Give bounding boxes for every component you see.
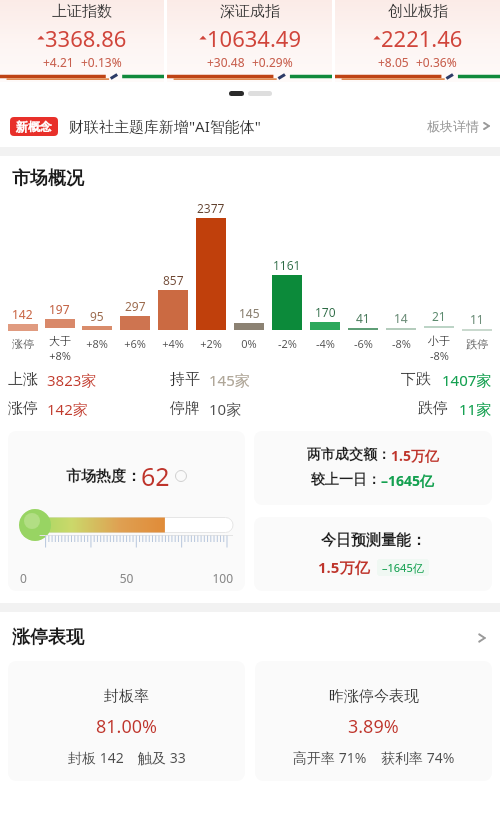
- staticText: 11家: [459, 399, 492, 419]
- staticText: -4%: [316, 336, 335, 351]
- staticText: 新概念: [16, 119, 52, 134]
- staticText: +2%: [200, 336, 222, 351]
- staticText: 0: [20, 570, 91, 586]
- staticText: +0.36%: [416, 54, 457, 70]
- staticText: +8.05: [378, 54, 409, 70]
- staticText: 获利率 74%: [381, 748, 455, 767]
- button[interactable]: 两市成交额：: [254, 431, 492, 505]
- staticText: 触及 33: [138, 748, 186, 767]
- staticText: 10家: [209, 399, 242, 419]
- staticText: 14: [394, 310, 408, 326]
- staticText: 板块详情: [427, 118, 479, 134]
- staticText: 100: [162, 570, 233, 586]
- staticText: 21: [432, 308, 446, 324]
- staticText: 停牌: [170, 399, 200, 418]
- staticText: 财联社主题库新增"AI智能体": [69, 116, 261, 136]
- button[interactable]: 今日预测量能：: [254, 517, 492, 591]
- button[interactable]: 新概念: [0, 105, 500, 147]
- staticText: 3823家: [47, 370, 97, 390]
- button[interactable]: 深证成指: [167, 0, 332, 82]
- staticText: 11: [470, 311, 484, 327]
- staticText: 创业板指: [388, 2, 448, 21]
- staticText: +30.48: [207, 54, 245, 70]
- staticText: 0%: [241, 336, 257, 351]
- staticText: 145家: [209, 370, 250, 390]
- staticText: 2221.46: [381, 23, 463, 53]
- staticText: -2%: [278, 336, 297, 351]
- staticText: 今日预测量能：: [321, 531, 426, 550]
- staticText: 3368.86: [45, 23, 127, 53]
- staticText: +8%: [49, 348, 71, 363]
- staticText: 142: [12, 306, 33, 322]
- staticText: 涨停: [12, 337, 34, 351]
- staticText: 81.00%: [96, 714, 157, 739]
- staticText: 市场概况: [12, 167, 84, 190]
- staticText: 197: [49, 301, 70, 317]
- staticText: 1.5万亿: [318, 557, 370, 577]
- staticText: 297: [125, 298, 146, 314]
- staticText: +0.13%: [81, 54, 122, 70]
- staticText: 10634.49: [207, 23, 301, 53]
- staticText: +4.21: [43, 54, 74, 70]
- staticText: 857: [163, 272, 184, 288]
- staticText: 市场热度：: [66, 467, 141, 486]
- staticText: 62: [141, 459, 170, 493]
- button[interactable]: 上证指数: [0, 0, 164, 82]
- button[interactable]: 市场热度：: [8, 431, 245, 591]
- staticText: -8%: [392, 336, 411, 351]
- staticText: 50: [91, 570, 162, 586]
- staticText: 下跌: [401, 370, 431, 389]
- staticText: 涨停: [8, 399, 38, 418]
- staticText: -6%: [354, 336, 373, 351]
- staticText: 1407家: [442, 370, 492, 390]
- staticText: 142家: [47, 399, 88, 419]
- staticText: 深证成指: [220, 2, 280, 21]
- staticText: 145: [239, 305, 260, 321]
- staticText: 3.89%: [348, 714, 399, 739]
- staticText: 2377: [197, 200, 225, 216]
- staticText: 涨停表现: [12, 626, 84, 649]
- staticText: +8%: [86, 336, 108, 351]
- staticText: 跌停: [466, 337, 488, 351]
- staticText: +6%: [124, 336, 146, 351]
- staticText: 昨涨停今表现: [329, 687, 419, 706]
- staticText: 41: [356, 310, 370, 326]
- staticText: –1645亿: [382, 560, 424, 575]
- staticText: 大于: [49, 334, 71, 348]
- other: 热度说明: [175, 470, 187, 482]
- staticText: +0.29%: [252, 54, 293, 70]
- staticText: 跌停: [418, 399, 448, 418]
- staticText: 上证指数: [52, 2, 112, 21]
- staticText: 1.5万亿: [391, 446, 439, 465]
- staticText: –1645亿: [381, 471, 435, 490]
- button[interactable]: 封板率: [8, 661, 245, 781]
- staticText: 封板率: [104, 687, 149, 706]
- staticText: 两市成交额：: [307, 446, 391, 464]
- staticText: 95: [90, 308, 104, 324]
- staticText: -8%: [430, 348, 449, 363]
- staticText: 小于: [428, 334, 450, 348]
- staticText: 170: [315, 304, 336, 320]
- button[interactable]: 涨停表现: [0, 612, 500, 661]
- button[interactable]: 创业板指: [335, 0, 500, 82]
- staticText: 持平: [170, 370, 200, 389]
- staticText: 较上一日：: [311, 471, 381, 489]
- staticText: 上涨: [8, 370, 38, 389]
- staticText: 1161: [273, 257, 301, 273]
- staticText: 封板 142: [68, 748, 124, 767]
- staticText: 高开率 71%: [293, 748, 367, 767]
- button[interactable]: 昨涨停今表现: [255, 661, 492, 781]
- staticText: +4%: [162, 336, 184, 351]
